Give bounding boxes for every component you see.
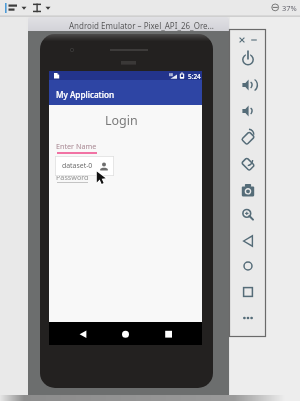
button[interactable]: Close	[237, 35, 247, 45]
button[interactable]: Volume up	[234, 72, 262, 98]
button[interactable]: More options	[234, 305, 262, 331]
staticText: Enter Name	[56, 141, 97, 151]
button[interactable]: Overview	[234, 279, 262, 305]
button[interactable]: dataset-0	[55, 156, 114, 176]
staticText: Login	[105, 112, 138, 129]
button[interactable]: Rotate left	[234, 124, 262, 150]
button[interactable]: Back	[234, 228, 262, 254]
staticText: dataset-0	[62, 161, 93, 170]
button[interactable]: Volume down	[234, 98, 262, 124]
button[interactable]: Minimize	[249, 35, 259, 45]
button[interactable]: Rotate right	[234, 150, 262, 176]
staticText: Password	[56, 172, 89, 182]
button[interactable]: Take screenshot	[234, 176, 262, 202]
staticText: My Application	[56, 89, 115, 100]
button[interactable]: Power	[234, 46, 262, 72]
staticText: 5:24	[188, 72, 201, 81]
button[interactable]: Home	[234, 253, 262, 279]
staticText: 37%	[282, 3, 297, 13]
button[interactable]: Zoom	[234, 202, 262, 228]
staticText: Android Emulator – Pixel_API_26_Ore...	[69, 20, 214, 31]
